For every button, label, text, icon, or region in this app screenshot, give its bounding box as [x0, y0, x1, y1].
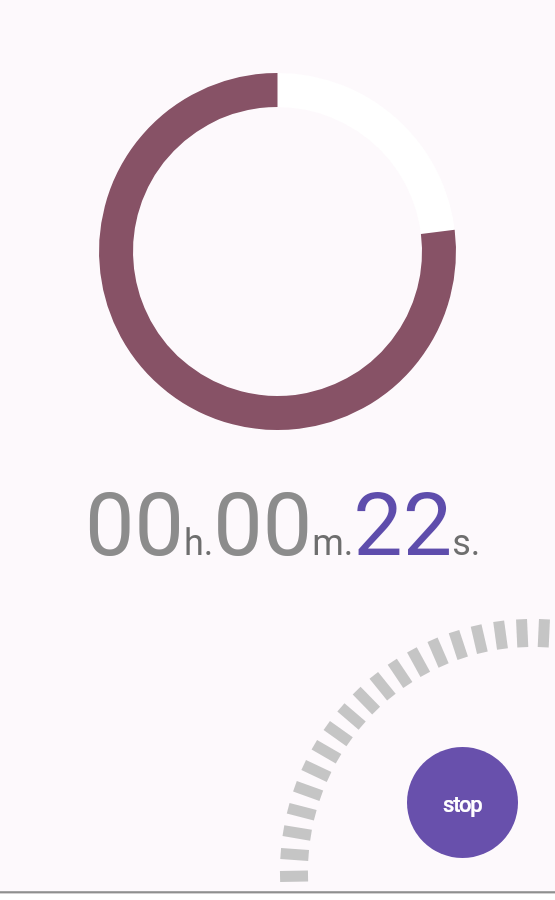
staticText: 00h.00m.22s. — [85, 473, 481, 576]
staticText: stop — [443, 792, 482, 818]
button[interactable]: stop — [407, 747, 518, 858]
